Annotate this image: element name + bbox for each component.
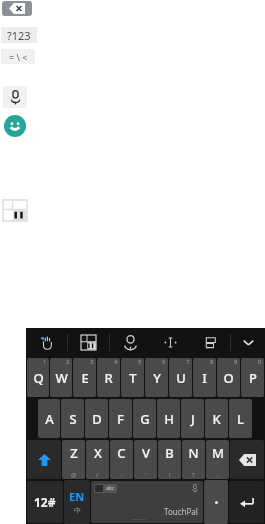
- button[interactable]: 7: [169, 358, 192, 397]
- staticText: U: [176, 369, 186, 387]
- staticText: @: [71, 471, 77, 479]
- button[interactable]: [204, 480, 228, 524]
- button[interactable]: = \ <: [1, 49, 35, 64]
- button[interactable]: Backspace: [230, 440, 264, 479]
- button[interactable]: 4: [97, 358, 120, 397]
- button[interactable]: J: [181, 399, 204, 438]
- button[interactable]: EN: [64, 480, 90, 524]
- staticText: Z: [70, 444, 78, 462]
- staticText: = \ <: [9, 51, 28, 63]
- staticText: Y: [153, 369, 161, 387]
- staticText: X: [94, 444, 102, 462]
- staticText: D: [92, 410, 102, 428]
- button[interactable]: -: [110, 440, 133, 479]
- button[interactable]: Enter: [229, 481, 264, 523]
- staticText: 3: [90, 358, 94, 366]
- staticText: 7: [186, 358, 190, 366]
- staticText: ?123: [7, 28, 31, 43]
- staticText: TouchPal: [164, 506, 198, 517]
- staticText: abc: [106, 485, 115, 492]
- button[interactable]: ,: [206, 440, 229, 479]
- staticText: 1: [43, 358, 47, 366]
- button[interactable]: /: [86, 440, 109, 479]
- staticText: P: [249, 369, 257, 387]
- staticText: N: [188, 444, 199, 462]
- button[interactable]: 2: [50, 358, 72, 397]
- button[interactable]: !: [158, 440, 181, 479]
- staticText: T: [129, 369, 137, 387]
- staticText: 12#: [34, 494, 56, 510]
- button[interactable]: Symbols: [27, 481, 63, 523]
- staticText: 5: [138, 358, 142, 366]
- button[interactable]: Keyboard layout: [68, 328, 109, 357]
- staticText: ?: [192, 471, 195, 479]
- button[interactable]: K: [205, 399, 228, 438]
- staticText: 6: [162, 358, 166, 366]
- button[interactable]: L: [229, 399, 252, 438]
- staticText: W: [55, 369, 68, 387]
- button[interactable]: 0: [241, 358, 264, 397]
- button[interactable]: ?: [182, 440, 205, 479]
- staticText: 中: [74, 506, 81, 515]
- staticText: J: [191, 410, 195, 428]
- button[interactable]: F: [109, 399, 132, 438]
- button[interactable]: 5: [121, 358, 144, 397]
- staticText: M: [212, 444, 224, 462]
- staticText: Q: [33, 369, 44, 387]
- staticText: H: [164, 410, 174, 428]
- button[interactable]: 3: [73, 358, 96, 397]
- staticText: L: [237, 410, 244, 428]
- staticText: B: [165, 444, 174, 462]
- button[interactable]: Hide keyboard: [231, 328, 265, 357]
- staticText: K: [212, 410, 221, 428]
- staticText: ': [145, 471, 147, 479]
- button[interactable]: Handwriting: [26, 328, 67, 357]
- staticText: A: [45, 410, 54, 428]
- button[interactable]: 9: [217, 358, 240, 397]
- staticText: 8: [210, 358, 214, 366]
- button[interactable]: Switch keyboard layout: [3, 200, 27, 221]
- button[interactable]: 1: [27, 358, 49, 397]
- staticText: 2: [66, 358, 70, 366]
- staticText: EN: [69, 489, 85, 504]
- button[interactable]: @: [62, 440, 85, 479]
- button[interactable]: Backspace: [2, 1, 32, 16]
- staticText: ,: [217, 471, 219, 479]
- staticText: 0: [258, 358, 262, 366]
- button[interactable]: Clipboard: [190, 328, 230, 357]
- staticText: R: [104, 369, 113, 387]
- button[interactable]: G: [133, 399, 156, 438]
- button[interactable]: A: [38, 399, 60, 438]
- button[interactable]: ?123: [1, 27, 37, 43]
- button[interactable]: D: [85, 399, 108, 438]
- button[interactable]: H: [157, 399, 180, 438]
- button[interactable]: Shift: [27, 440, 61, 479]
- staticText: O: [223, 369, 234, 387]
- button[interactable]: Emoji: [4, 115, 26, 137]
- button[interactable]: 6: [145, 358, 168, 397]
- staticText: V: [142, 444, 150, 462]
- button[interactable]: Cursor control: [150, 328, 190, 357]
- staticText: F: [117, 410, 124, 428]
- staticText: E: [81, 369, 89, 387]
- staticText: -: [121, 471, 123, 479]
- button[interactable]: Voice input: [3, 86, 27, 108]
- button[interactable]: S: [61, 399, 84, 438]
- button[interactable]: 8: [193, 358, 216, 397]
- button[interactable]: Space: [91, 481, 203, 523]
- button[interactable]: ': [134, 440, 157, 479]
- button[interactable]: Voice input: [110, 328, 150, 357]
- staticText: 9: [234, 358, 238, 366]
- staticText: C: [117, 444, 126, 462]
- staticText: G: [140, 410, 150, 428]
- staticText: I: [202, 369, 207, 387]
- staticText: S: [69, 410, 77, 428]
- staticText: /: [96, 471, 99, 479]
- staticText: !: [169, 471, 171, 479]
- staticText: 4: [114, 358, 118, 366]
